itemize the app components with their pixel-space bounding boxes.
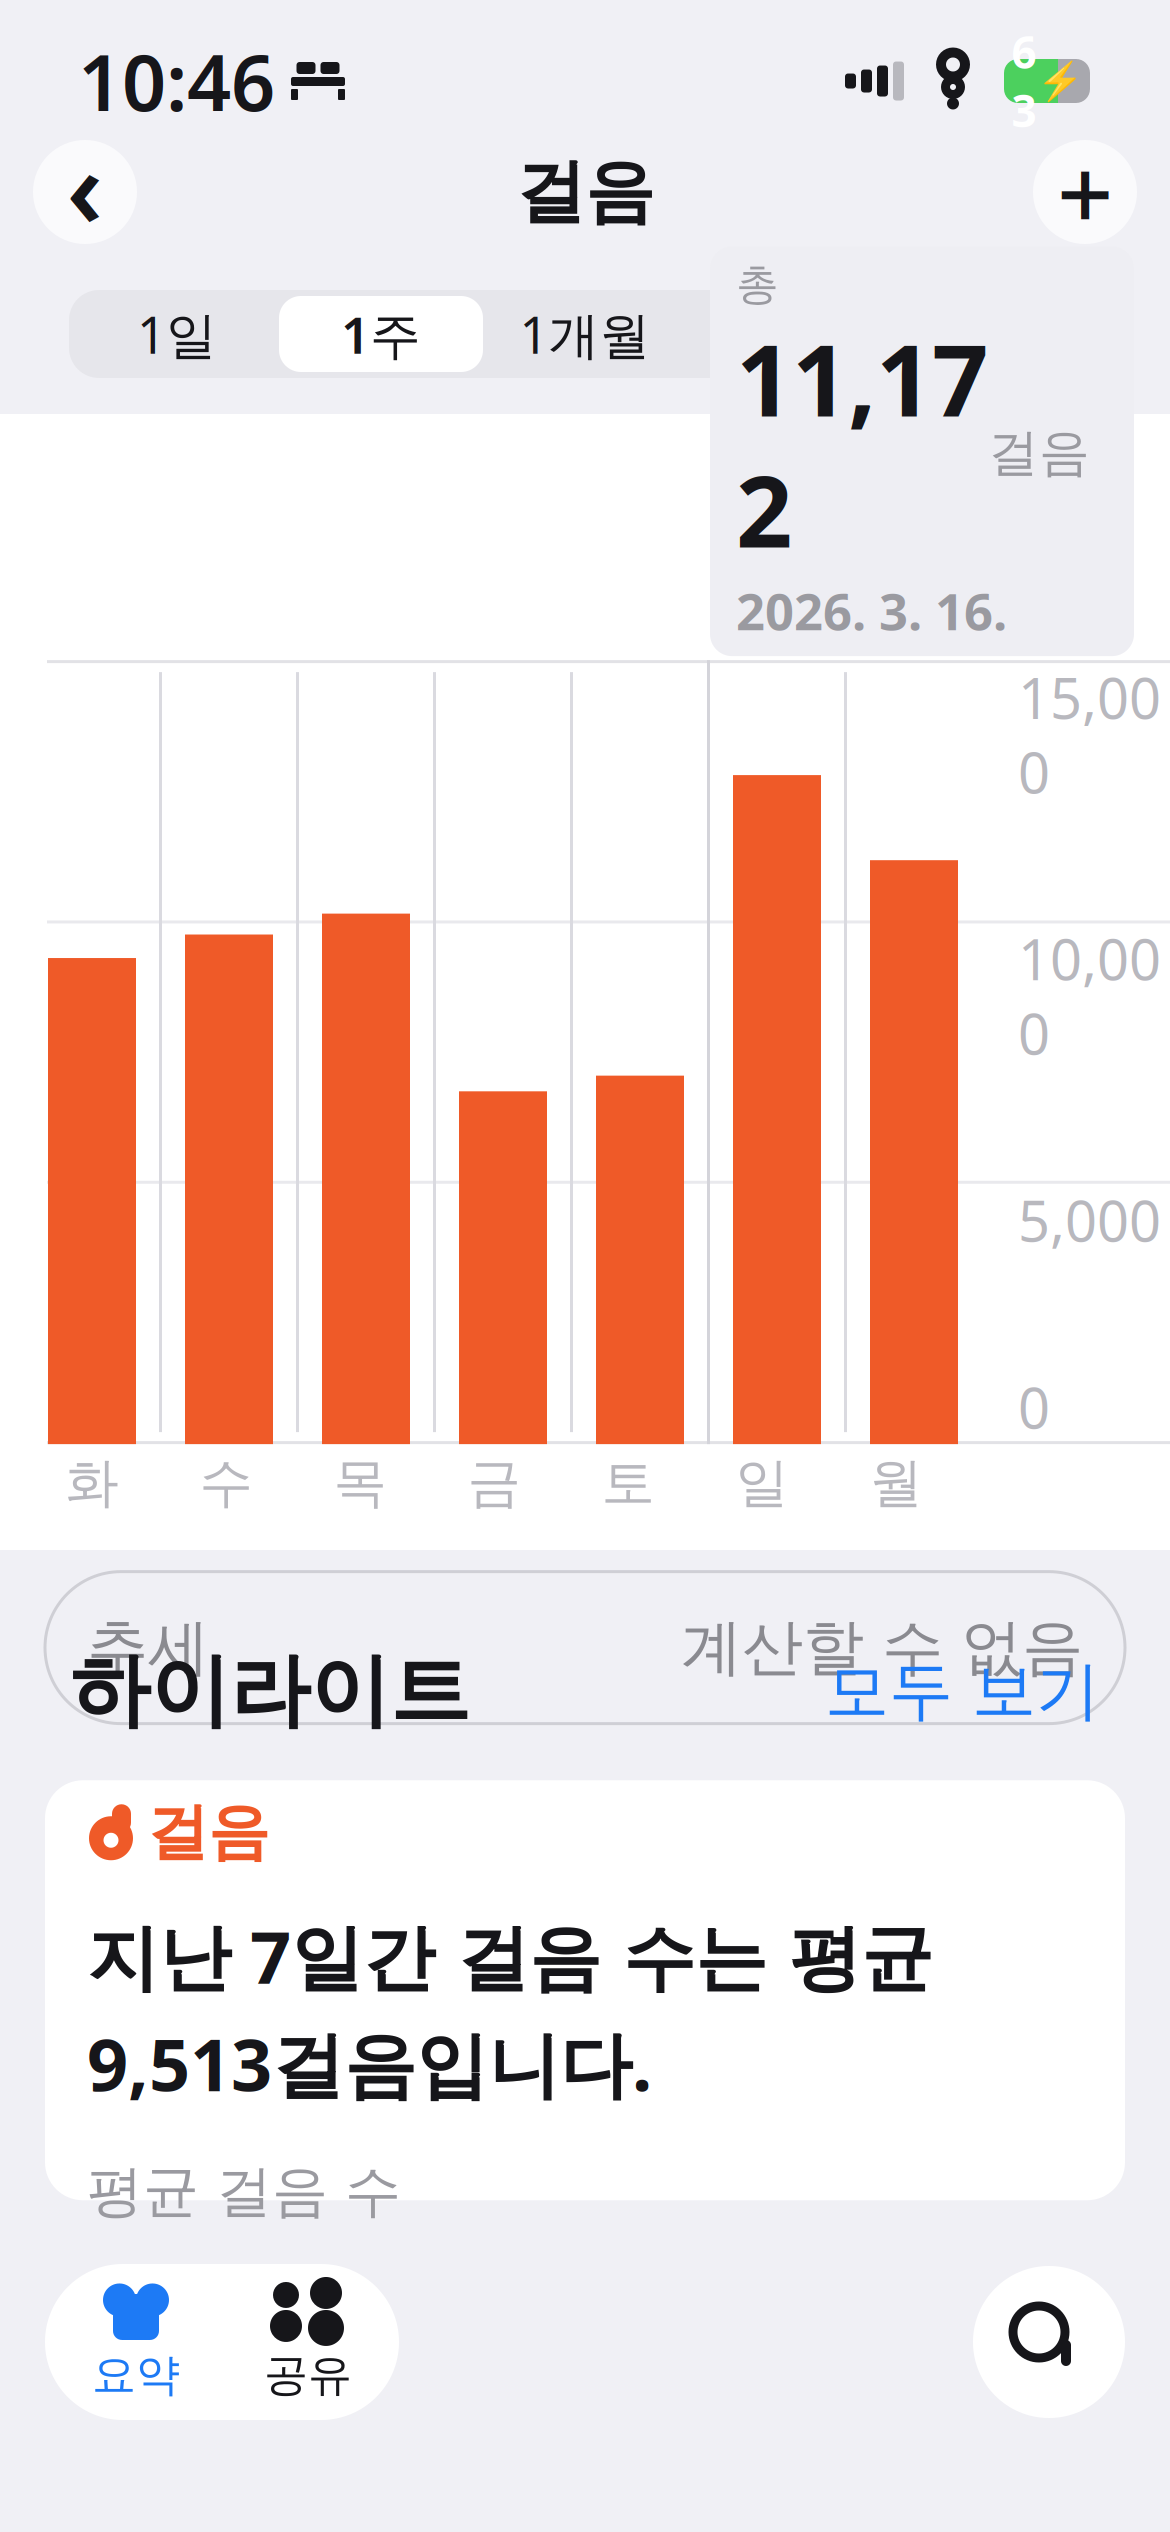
staticText: 1개월 — [519, 300, 650, 368]
button[interactable]: 걸음 — [0, 1780, 1170, 2200]
button[interactable]: 공유 — [222, 2269, 394, 2415]
button[interactable]: 6개월 — [687, 296, 891, 372]
staticText: 하이라이트 — [70, 1642, 470, 1740]
staticText: 9,513걸음입니다. — [87, 2015, 652, 2111]
button[interactable]: 1주 — [279, 296, 483, 372]
staticText: 5,000 — [1018, 1183, 1161, 1257]
staticText: 금 — [467, 1450, 520, 1516]
button[interactable]: 1년 — [891, 296, 1095, 372]
staticText: 1주 — [341, 300, 421, 368]
button[interactable]: 요약 — [50, 2269, 222, 2415]
staticText: 요약 — [92, 2348, 180, 2402]
button[interactable]: Search — [973, 2266, 1125, 2418]
button[interactable]: 1개월 — [483, 296, 687, 372]
staticText: 총 — [736, 258, 779, 311]
staticText: 2026. 3. 16. — [736, 577, 1007, 644]
staticText: 10:46 — [78, 30, 275, 132]
staticText: ‹ — [66, 115, 103, 257]
staticText: 걸음 — [516, 149, 654, 235]
staticText: 평균 걸음 수 — [87, 2157, 401, 2226]
staticText: 공유 — [264, 2348, 352, 2402]
button[interactable]: 1일 — [75, 296, 279, 372]
staticText: 0 — [1018, 1370, 1050, 1444]
staticText: + — [1057, 126, 1113, 257]
staticText: 지난 7일간 걸음 수는 평균 — [87, 1908, 933, 2003]
staticText: 15,000 — [1018, 660, 1161, 809]
staticText: 1년 — [953, 300, 1033, 368]
staticText: 6개월 — [723, 300, 854, 368]
staticText: 추세 — [87, 1610, 209, 1685]
staticText: 토 — [601, 1450, 654, 1516]
staticText: 걸음 — [147, 1795, 269, 1870]
staticText: 목 — [333, 1450, 386, 1516]
staticText: 계산할 수 없음 — [681, 1610, 1083, 1685]
staticText: 63 — [1011, 23, 1036, 139]
staticText: 일 — [735, 1450, 788, 1516]
staticText: 월 — [869, 1450, 922, 1516]
button[interactable]: 모두 보기 — [825, 1652, 1100, 1730]
staticText: 모두 보기 — [825, 1652, 1100, 1730]
staticText: 걸음 — [988, 422, 1090, 484]
button[interactable]: 추세 — [0, 1572, 1170, 1724]
staticText: 11,172 — [736, 313, 988, 575]
staticText: 수 — [199, 1450, 252, 1516]
staticText: 10,000 — [1018, 921, 1161, 1070]
button[interactable]: Add — [1033, 140, 1137, 244]
staticText: ⚡ — [1036, 60, 1082, 102]
button[interactable]: Back — [33, 140, 137, 244]
staticText: 1일 — [137, 300, 217, 368]
staticText: 화 — [65, 1450, 118, 1516]
